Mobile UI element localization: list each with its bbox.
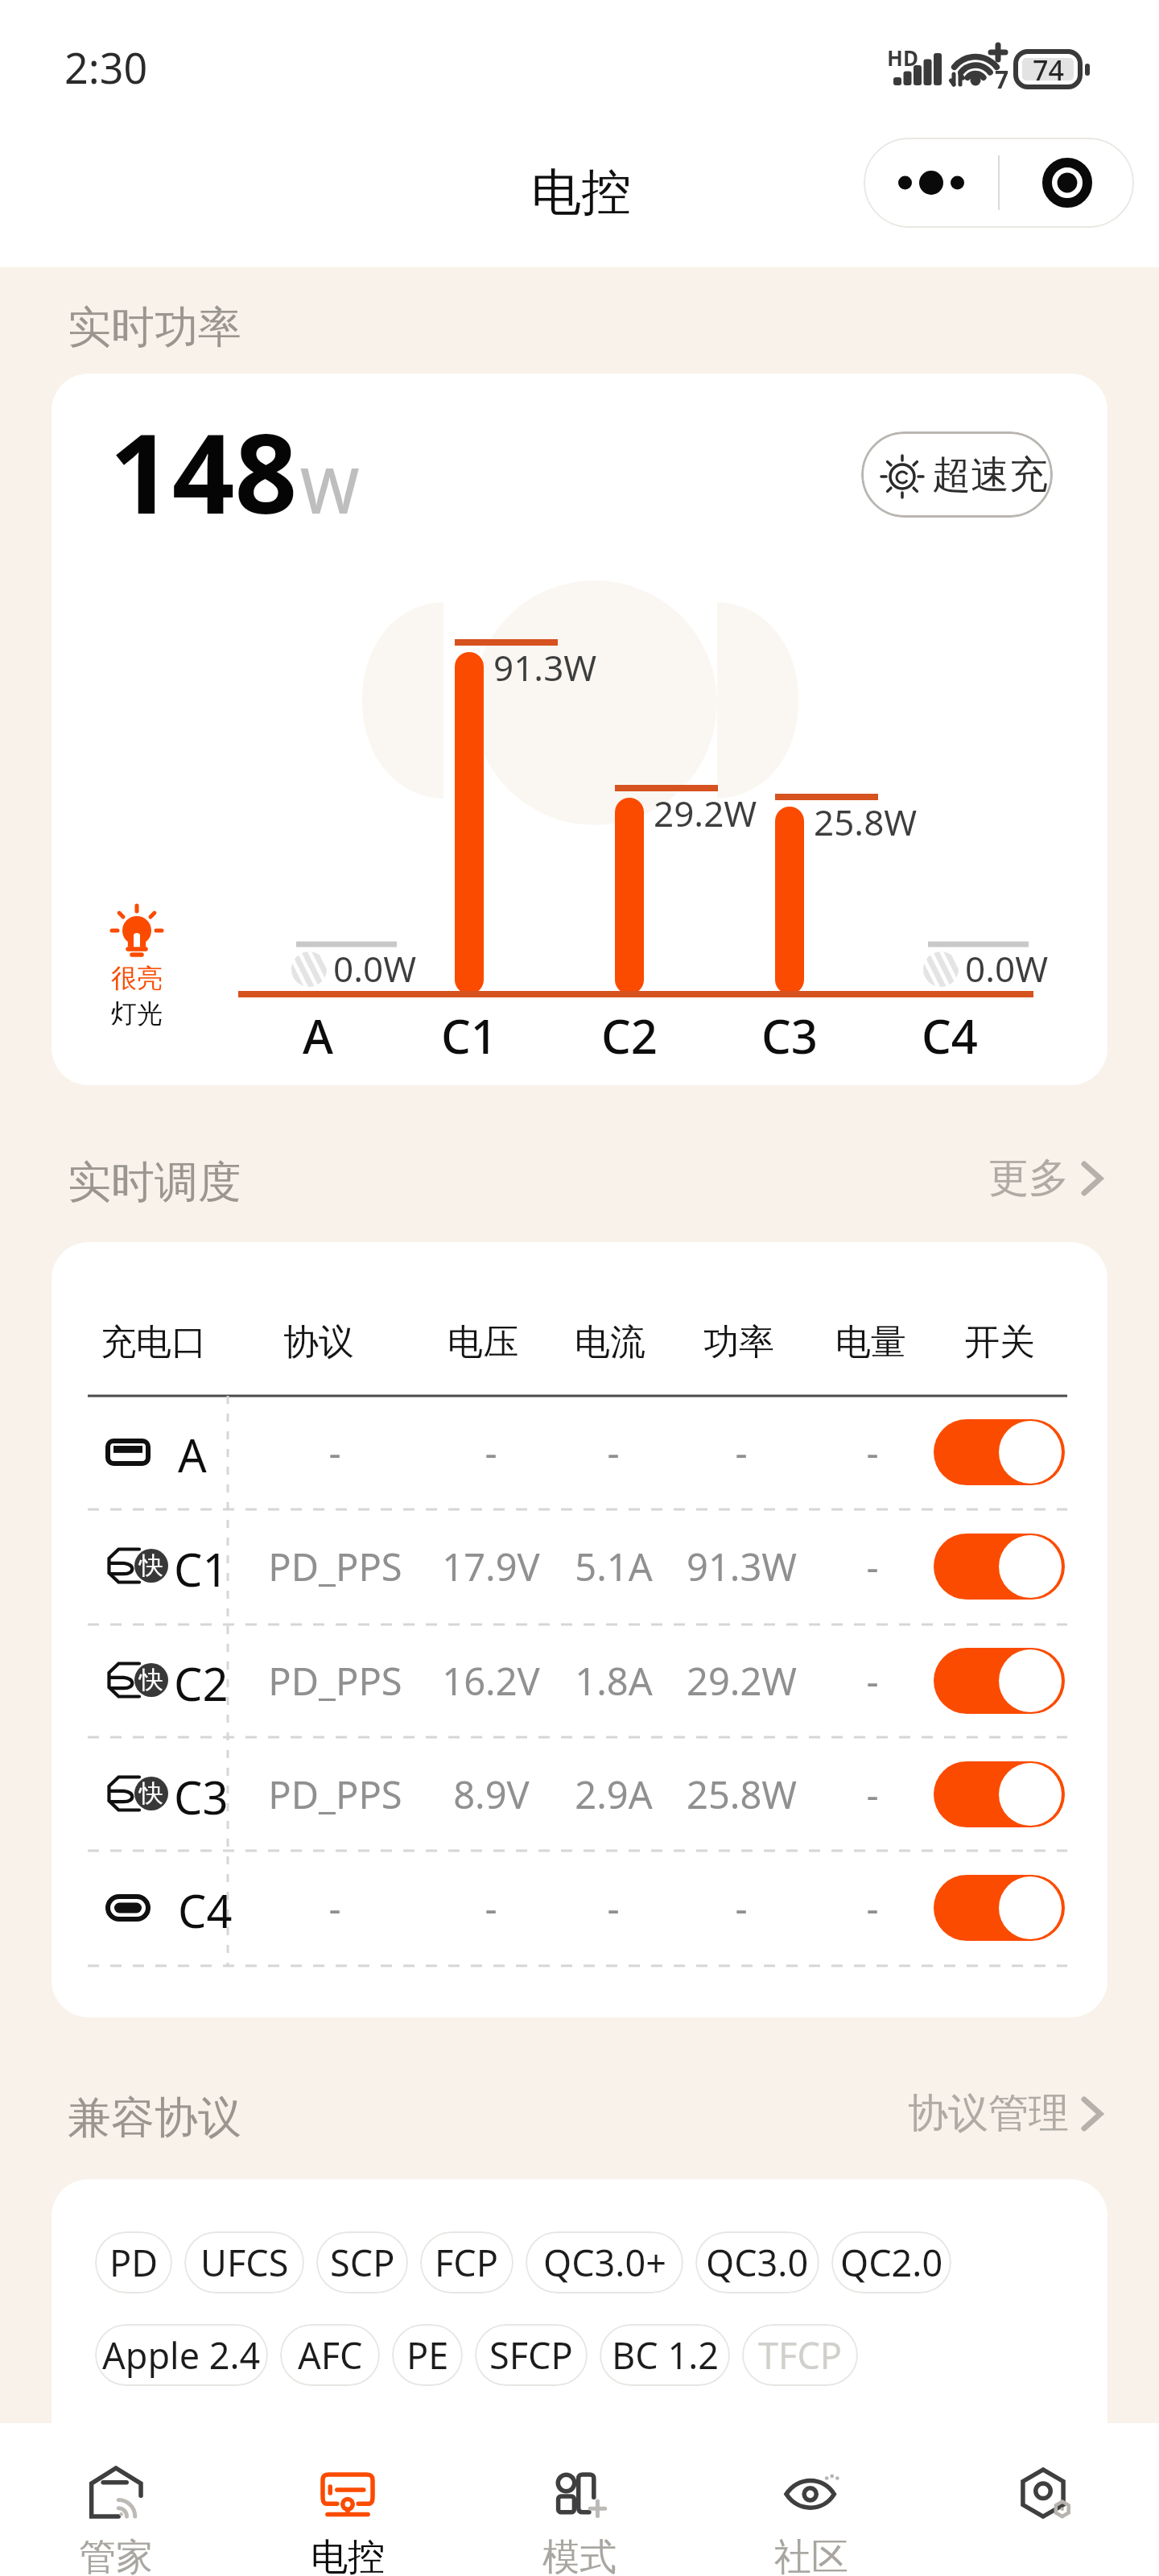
staticText: 0.0W (965, 944, 1049, 993)
staticText: 快 (139, 1665, 163, 1695)
staticText: PE (406, 2330, 449, 2380)
staticText: 2:30 (64, 39, 148, 96)
staticText: 快 (139, 1550, 163, 1581)
staticText: 兼容协议 (68, 2091, 241, 2145)
button[interactable] (88, 1851, 1071, 1964)
button[interactable]: 更多 (988, 1153, 1103, 1203)
button[interactable]: Toggle port (934, 1875, 1065, 1941)
staticText: C2 (174, 1653, 229, 1714)
button[interactable]: Toggle port (934, 1534, 1065, 1600)
button[interactable]: 电控 (232, 2423, 464, 2576)
staticText: - (735, 1426, 748, 1478)
staticText: 电流 (575, 1320, 645, 1364)
staticText: BC 1.2 (612, 2330, 719, 2380)
staticText: 148 (109, 397, 298, 546)
staticText: 25.8W (814, 798, 918, 846)
staticText: 协议 (283, 1320, 354, 1364)
staticText: - (866, 1882, 879, 1934)
staticText: 8.9V (453, 1769, 530, 1820)
staticText: 很亮 (111, 962, 163, 994)
button[interactable]: PD (95, 2231, 172, 2293)
button[interactable]: Scan device (927, 2423, 1159, 2576)
button[interactable]: TFCP (742, 2324, 858, 2386)
staticText: TFCP (758, 2330, 843, 2380)
staticText: 协议管理 (908, 2088, 1069, 2139)
button[interactable]: 超速充 (861, 431, 1053, 518)
staticText: - (328, 1426, 341, 1478)
staticText: SFCP (489, 2330, 573, 2380)
staticText: W (300, 447, 360, 532)
button[interactable]: UFCS (184, 2231, 304, 2293)
button[interactable]: Toggle port (934, 1419, 1065, 1485)
staticText: 管家 (79, 2534, 153, 2576)
button[interactable]: Apple 2.4 (95, 2324, 268, 2386)
button[interactable]: More options (864, 138, 998, 228)
button[interactable] (88, 1510, 1071, 1623)
staticText: 2.9A (575, 1769, 653, 1820)
staticText: - (485, 1426, 497, 1478)
staticText: - (328, 1882, 341, 1934)
staticText: FCP (435, 2238, 499, 2287)
staticText: C1 (174, 1538, 229, 1600)
staticText: 模式 (542, 2534, 617, 2576)
button[interactable]: QC3.0+ (526, 2231, 683, 2293)
staticText: - (866, 1655, 879, 1707)
button[interactable] (88, 1624, 1071, 1737)
staticText: 电控 (311, 2534, 385, 2576)
staticText: 超速充 (932, 451, 1048, 499)
button[interactable] (88, 1396, 1071, 1509)
button[interactable] (88, 1738, 1071, 1851)
staticText: PD_PPS (268, 1541, 402, 1592)
staticText: AFC (298, 2330, 363, 2380)
staticText: 社区 (774, 2534, 848, 2576)
staticText: 实时调度 (68, 1155, 241, 1210)
staticText: 灯光 (111, 997, 163, 1030)
staticText: PD_PPS (268, 1769, 402, 1820)
staticText: 74 (1033, 52, 1064, 87)
staticText: 0.0W (333, 944, 417, 993)
staticText: 实时功率 (68, 300, 241, 355)
button[interactable]: 模式 (464, 2423, 695, 2576)
staticText: 29.2W (654, 789, 757, 837)
button[interactable]: 管家 (0, 2423, 232, 2576)
staticText: - (607, 1426, 620, 1478)
staticText: - (485, 1882, 497, 1934)
staticText: 7 (995, 63, 1009, 96)
staticText: - (866, 1426, 879, 1478)
staticText: SCP (330, 2238, 395, 2287)
button[interactable]: BC 1.2 (600, 2324, 730, 2386)
button[interactable]: Toggle port (934, 1648, 1065, 1714)
button[interactable]: SFCP (475, 2324, 588, 2386)
button[interactable]: Close (1000, 138, 1134, 228)
staticText: HD (887, 43, 918, 72)
staticText: 25.8W (687, 1769, 797, 1820)
staticText: 29.2W (687, 1655, 797, 1707)
staticText: C4 (178, 1880, 233, 1941)
staticText: C2 (601, 1004, 658, 1060)
staticText: 电量 (835, 1320, 906, 1364)
staticText: 电控 (531, 161, 631, 224)
staticText: - (735, 1882, 748, 1934)
staticText: 5.1A (575, 1541, 653, 1592)
button[interactable]: 社区 (695, 2423, 927, 2576)
staticText: C1 (441, 1004, 498, 1060)
button[interactable]: FCP (420, 2231, 514, 2293)
staticText: QC3.0 (706, 2238, 809, 2287)
staticText: 快 (139, 1778, 163, 1809)
staticText: 功率 (703, 1320, 774, 1364)
button[interactable]: AFC (280, 2324, 380, 2386)
staticText: 开关 (964, 1320, 1035, 1364)
button[interactable]: SCP (316, 2231, 408, 2293)
staticText: 16.2V (442, 1655, 540, 1707)
staticText: - (866, 1541, 879, 1592)
button[interactable]: QC2.0 (831, 2231, 951, 2293)
button[interactable]: 协议管理 (908, 2088, 1103, 2139)
staticText: 充电口 (101, 1320, 207, 1364)
staticText: Apple 2.4 (102, 2330, 261, 2380)
staticText: 1.8A (575, 1655, 653, 1707)
staticText: PD_PPS (268, 1655, 402, 1707)
button[interactable]: PE (392, 2324, 463, 2386)
button[interactable]: QC3.0 (695, 2231, 819, 2293)
staticText: QC2.0 (840, 2238, 943, 2287)
button[interactable]: Toggle port (934, 1761, 1065, 1827)
